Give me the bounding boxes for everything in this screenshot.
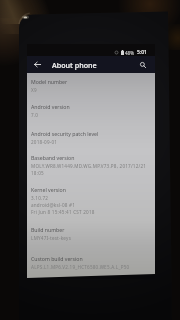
button[interactable]: Android security patch level (27, 130, 155, 147)
button[interactable]: Baseband version (27, 154, 155, 178)
button[interactable]: Custom build version (27, 255, 155, 272)
staticText: Custom build version (31, 255, 83, 262)
staticText: 48% (125, 50, 134, 56)
staticText: 3.10.72 android@ksl-08 #1 Fri Jun 8 15:4… (31, 195, 95, 215)
staticText: 7.0 (31, 112, 39, 118)
staticText: Android security patch level (31, 130, 99, 137)
button[interactable]: Search (136, 58, 149, 71)
button[interactable]: Kernel version (27, 186, 155, 218)
staticText: X9 (31, 87, 37, 93)
staticText: 5:01 (137, 49, 147, 56)
staticText: Model number (31, 78, 68, 85)
staticText: ALPS.L1.MP6.V2.19_HCT6580.WE5.A.L_P50 (31, 264, 130, 270)
button[interactable]: Back (30, 56, 44, 73)
staticText: 2018-09-01 (31, 139, 58, 145)
staticText: Android version (31, 103, 70, 110)
staticText: LMY47I-test-keys (31, 235, 72, 241)
button[interactable]: Build number (27, 226, 155, 243)
button[interactable]: Android version (27, 103, 155, 120)
button[interactable]: Model number (27, 78, 155, 95)
staticText: Baseband version (31, 154, 75, 161)
staticText: About phone (52, 60, 97, 70)
staticText: MOLY.WR8.W1449.MD.WG.MP.V73.P8, 2017/12/… (31, 163, 147, 176)
staticText: Build number (31, 226, 65, 233)
staticText: Kernel version (31, 186, 66, 193)
